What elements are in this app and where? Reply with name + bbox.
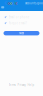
- staticText: Email or phone: [9, 15, 30, 19]
- button[interactable]: Next: [3, 31, 39, 35]
- button[interactable]: Terms Privacy Help: [0, 83, 43, 86]
- staticText: l: [14, 0, 15, 6]
- staticText: accounts.google.com: [25, 1, 43, 5]
- button[interactable]: Browser tab: [1, 6, 4, 8]
- staticText: g: [12, 0, 14, 6]
- staticText: e: [15, 0, 17, 6]
- staticText: Forgot email?: [9, 21, 27, 25]
- staticText: Next: [19, 31, 24, 35]
- staticText: G: [5, 0, 8, 6]
- staticText: o: [10, 0, 12, 6]
- staticText: o: [8, 0, 10, 6]
- staticText: Terms Privacy Help: [8, 83, 34, 87]
